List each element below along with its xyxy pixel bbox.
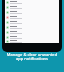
button[interactable]	[5, 0, 59, 5]
button[interactable]	[5, 20, 59, 25]
button[interactable]	[5, 25, 59, 30]
button[interactable]	[5, 10, 59, 15]
button[interactable]	[5, 5, 59, 10]
button[interactable]	[5, 15, 59, 20]
staticText: Manage & clear unwanted app notification…	[4, 52, 60, 61]
button[interactable]	[5, 35, 59, 40]
button[interactable]	[5, 30, 59, 35]
button[interactable]	[5, 40, 59, 43]
